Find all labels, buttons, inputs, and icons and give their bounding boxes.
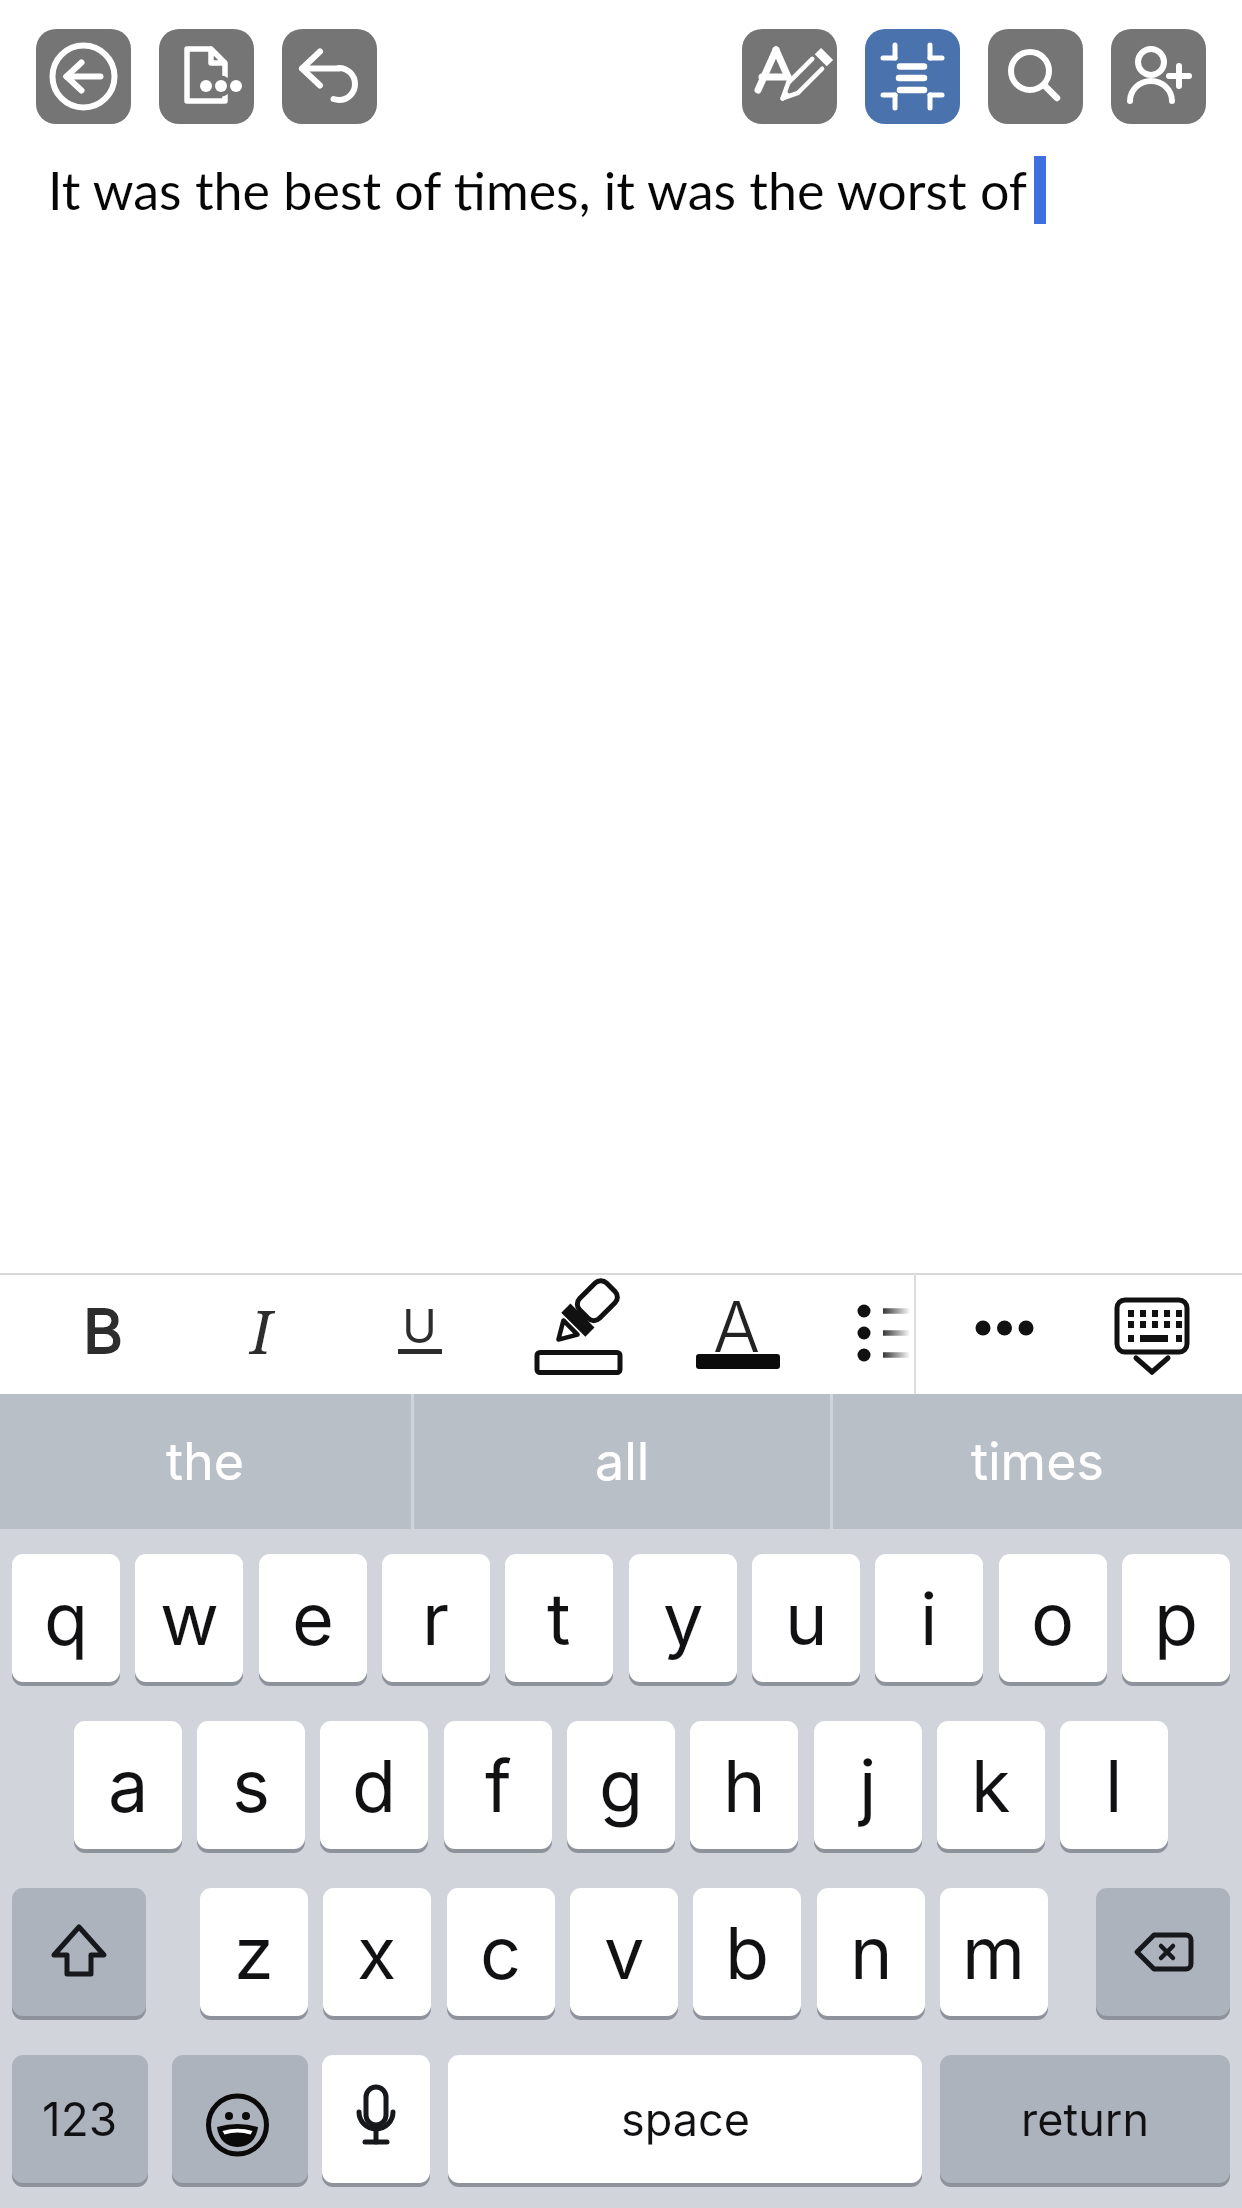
staticText: y (663, 1575, 704, 1662)
staticText: f (485, 1742, 512, 1829)
staticText: t (547, 1575, 571, 1662)
staticText: k (971, 1742, 1011, 1829)
staticText: h (723, 1742, 766, 1829)
staticText: the (166, 1430, 245, 1493)
staticText: I (250, 1290, 273, 1372)
staticText: all (595, 1430, 650, 1493)
staticText: g (599, 1742, 644, 1829)
staticText: z (234, 1909, 274, 1996)
staticText: m (962, 1909, 1026, 1996)
staticText: x (357, 1909, 397, 1996)
staticText: U (402, 1297, 437, 1354)
staticText: l (1105, 1742, 1123, 1829)
staticText: j (859, 1742, 877, 1829)
staticText: n (850, 1909, 893, 1996)
staticText: B (83, 1294, 123, 1368)
staticText: return (1021, 2092, 1149, 2146)
staticText: d (352, 1742, 397, 1829)
staticText: It was the best of times, it was the wor… (48, 159, 1028, 221)
staticText: v (604, 1909, 645, 1996)
staticText: a (108, 1742, 149, 1829)
staticText: p (1154, 1575, 1199, 1662)
staticText: c (480, 1909, 522, 1996)
staticText: r (422, 1575, 450, 1662)
staticText: o (1031, 1575, 1075, 1662)
staticText: A (713, 1284, 761, 1369)
staticText: w (160, 1575, 219, 1662)
staticText: q (44, 1575, 89, 1662)
staticText: s (232, 1742, 271, 1829)
staticText: b (725, 1909, 770, 1996)
staticText: 123 (42, 2091, 118, 2147)
staticText: i (920, 1575, 938, 1662)
staticText: space (621, 2092, 750, 2146)
staticText: e (292, 1575, 334, 1662)
staticText: u (785, 1575, 828, 1662)
staticText: times (971, 1430, 1104, 1493)
